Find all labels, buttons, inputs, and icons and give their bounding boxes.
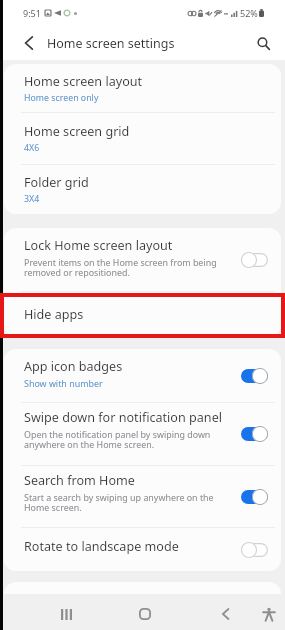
staticText: Prevent items on the Home screen from be… bbox=[24, 256, 217, 279]
staticText: Search from Home bbox=[24, 472, 135, 489]
button[interactable]: Recent apps bbox=[46, 594, 86, 630]
button[interactable]: Home bbox=[125, 594, 165, 630]
button[interactable]: Rotate to landscape mode bbox=[4, 528, 281, 571]
staticText: Home screen settings bbox=[47, 35, 175, 52]
staticText: Home screen only bbox=[24, 92, 99, 104]
button[interactable]: Home screen layout bbox=[4, 64, 281, 112]
button[interactable]: Switch bbox=[241, 542, 268, 558]
button[interactable]: App icon badges bbox=[4, 349, 281, 402]
button[interactable]: Switch bbox=[241, 489, 268, 505]
staticText: Rotate to landscape mode bbox=[24, 538, 179, 555]
staticText: App icon badges bbox=[24, 358, 123, 375]
staticText: 52% bbox=[240, 7, 258, 19]
staticText: 9:51 bbox=[23, 7, 41, 19]
staticText: Folder grid bbox=[24, 174, 89, 191]
staticText: Lock Home screen layout bbox=[24, 237, 173, 254]
button[interactable]: Switch bbox=[241, 252, 268, 268]
button[interactable]: Lock Home screen layout bbox=[4, 228, 281, 291]
staticText: 3X4 bbox=[24, 193, 40, 205]
button[interactable]: Navigate up bbox=[0, 26, 47, 60]
staticText: Open the notification panel by swiping d… bbox=[24, 428, 211, 451]
button[interactable]: Switch bbox=[241, 368, 268, 384]
button[interactable]: Folder grid bbox=[4, 165, 281, 214]
staticText: Swipe down for notification panel bbox=[24, 409, 222, 426]
staticText: Home screen grid bbox=[24, 123, 130, 140]
staticText: 4X6 bbox=[24, 142, 40, 154]
button[interactable]: Switch bbox=[241, 426, 268, 442]
staticText: Show with number bbox=[24, 377, 103, 389]
staticText: Hide apps bbox=[24, 306, 84, 323]
button[interactable]: Search bbox=[242, 26, 285, 60]
staticText: Start a search by swiping up anywhere on… bbox=[24, 491, 214, 514]
button[interactable]: Home screen grid bbox=[4, 113, 281, 164]
button[interactable]: Hide apps bbox=[4, 292, 281, 337]
button[interactable]: Swipe down for notification panel bbox=[4, 403, 281, 465]
button[interactable]: Accessibility bbox=[249, 594, 285, 630]
button[interactable]: Search from Home bbox=[4, 466, 281, 527]
staticText: Home screen layout bbox=[24, 73, 143, 90]
button[interactable]: Back bbox=[205, 594, 245, 630]
